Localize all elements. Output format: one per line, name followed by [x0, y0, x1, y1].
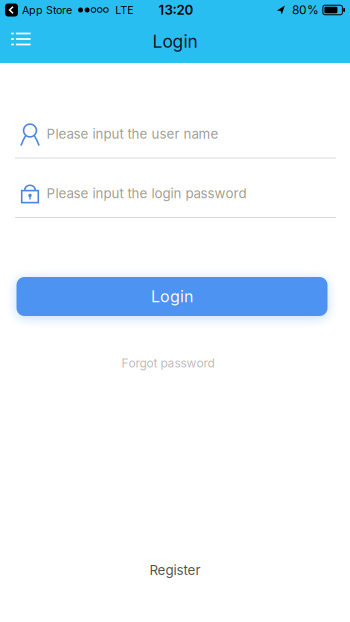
- staticText: App Store: [22, 4, 72, 16]
- staticText: Login: [152, 31, 197, 52]
- button[interactable]: Forgot password: [113, 352, 222, 374]
- staticText: Forgot password: [121, 356, 214, 370]
- button[interactable]: Register: [139, 557, 210, 583]
- staticText: Register: [149, 562, 200, 578]
- staticText: Please input the login password: [46, 186, 246, 201]
- button[interactable]: Menu: [0, 20, 41, 63]
- button[interactable]: Login: [16, 277, 327, 316]
- textField[interactable]: Please input the user name: [46, 126, 336, 142]
- staticText: 80%: [292, 3, 319, 17]
- staticText: LTE: [115, 4, 133, 16]
- staticText: 13:20: [158, 2, 193, 18]
- textField[interactable]: Please input the login password: [46, 186, 336, 201]
- staticText: Please input the user name: [46, 126, 218, 142]
- staticText: Login: [151, 287, 193, 306]
